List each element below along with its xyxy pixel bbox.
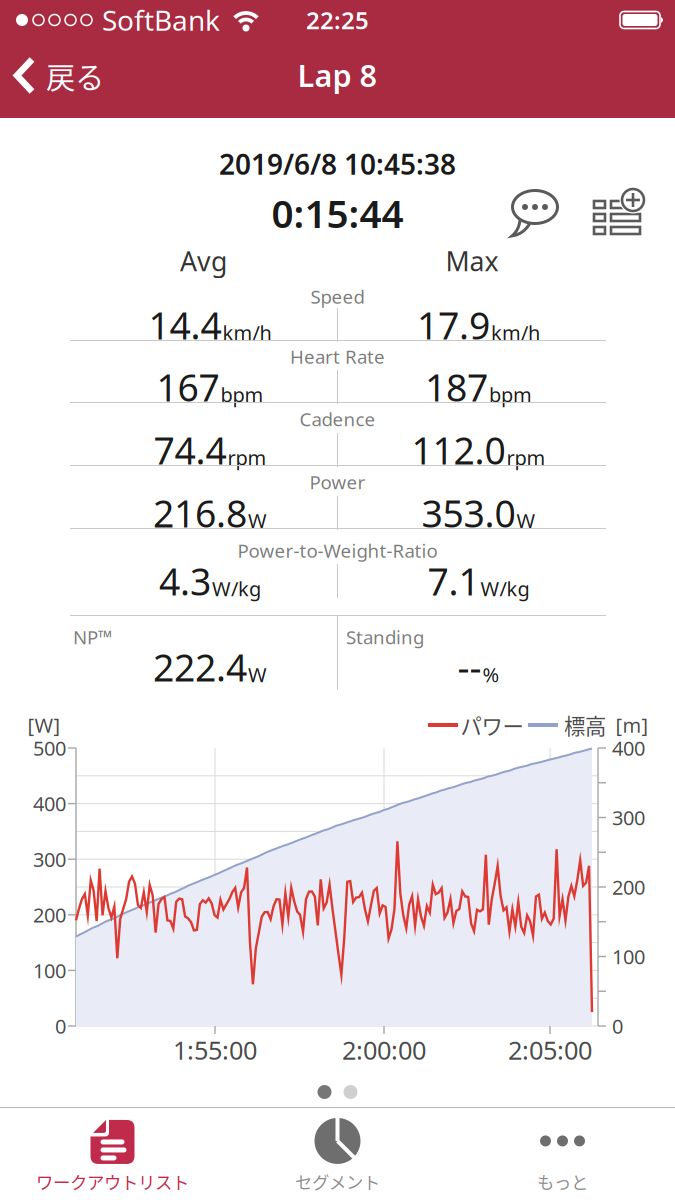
staticText: 0:15:44 (271, 187, 403, 239)
staticText: 74.4 (153, 425, 226, 475)
staticText: 1:55:00 (173, 1033, 257, 1067)
staticText: 標高 (564, 710, 606, 740)
staticText: セグメント (295, 1169, 380, 1194)
staticText: 187 (425, 362, 488, 412)
staticText: % (482, 661, 499, 688)
staticText: Max (445, 243, 498, 279)
staticText: 200 (33, 901, 66, 928)
staticText: 300 (33, 846, 66, 872)
staticText: 17.9 (417, 300, 490, 350)
staticText: Avg (180, 243, 227, 279)
staticText: W (248, 507, 267, 534)
staticText: 400 (612, 735, 645, 761)
staticText: Lap 8 (297, 55, 377, 95)
staticText: rpm (227, 444, 266, 471)
staticText: W/kg (212, 575, 261, 602)
staticText: -- (457, 642, 481, 692)
staticText: SoftBank (102, 1, 220, 39)
button[interactable]: コメント (508, 190, 562, 238)
staticText: 戻る (46, 54, 104, 97)
staticText: 100 (612, 943, 645, 970)
staticText: Power-to-Weight-Ratio (237, 538, 437, 563)
staticText: 22:25 (306, 4, 369, 36)
staticText: rpm (506, 444, 545, 471)
staticText: 100 (33, 957, 66, 984)
staticText: Power (309, 470, 365, 494)
staticText: 353.0 (421, 488, 515, 538)
staticText: 500 (33, 735, 66, 761)
staticText: Standing (346, 625, 424, 649)
staticText: [W] (27, 712, 60, 738)
staticText: 4.3 (159, 556, 211, 606)
staticText: bpm (489, 381, 532, 408)
staticText: Speed (310, 284, 364, 309)
button[interactable]: もっと (450, 1118, 675, 1194)
staticText: 216.8 (153, 488, 247, 538)
staticText: 222.4 (153, 642, 247, 692)
staticText: [m] (615, 712, 648, 738)
staticText: 112.0 (411, 425, 505, 475)
button[interactable]: 追加 (593, 191, 643, 237)
staticText: bpm (220, 381, 263, 408)
staticText: W (516, 507, 535, 534)
staticText: 300 (612, 804, 645, 831)
staticText: km/h (491, 319, 540, 346)
staticText: 2:00:00 (342, 1033, 426, 1067)
staticText: 0 (55, 1013, 66, 1039)
staticText: km/h (222, 319, 271, 346)
staticText: 2:05:00 (508, 1033, 592, 1067)
staticText: 0 (612, 1013, 623, 1039)
staticText: ワークアウトリスト (36, 1169, 189, 1194)
staticText: W/kg (480, 575, 529, 602)
staticText: 2019/6/8 10:45:38 (219, 145, 456, 183)
staticText: 167 (156, 362, 219, 412)
staticText: 7.1 (427, 556, 479, 606)
staticText: Heart Rate (290, 344, 385, 369)
button[interactable]: ワークアウトリスト (0, 1118, 225, 1194)
staticText: W (248, 661, 267, 688)
button[interactable]: 戻る (0, 54, 104, 104)
staticText: 400 (33, 790, 66, 817)
staticText: 200 (612, 874, 645, 900)
button[interactable]: セグメント (225, 1118, 450, 1194)
staticText: Cadence (299, 407, 375, 431)
staticText: もっと (537, 1169, 588, 1194)
staticText: NP™ (73, 625, 112, 649)
staticText: パワー (460, 710, 523, 740)
staticText: 14.4 (148, 300, 221, 350)
